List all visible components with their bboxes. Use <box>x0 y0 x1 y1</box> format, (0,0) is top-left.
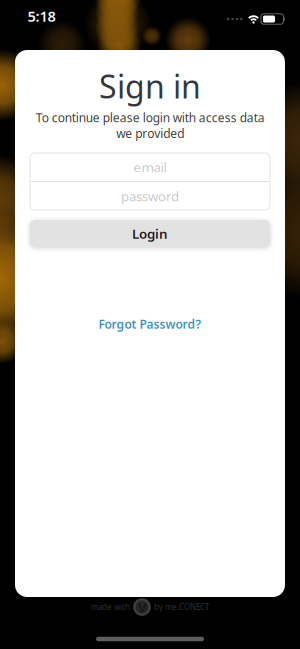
staticText: V <box>138 598 146 616</box>
button[interactable]: email <box>30 153 270 181</box>
staticText: Sign in <box>99 65 201 107</box>
staticText: by me.CONECT <box>154 602 209 612</box>
button[interactable]: password <box>30 182 270 210</box>
button[interactable]: Forgot Password? <box>80 316 220 332</box>
staticText: Login <box>132 225 168 242</box>
staticText: To continue please login with access dat… <box>35 110 264 141</box>
staticText: password <box>121 187 179 205</box>
staticText: made with <box>91 602 130 612</box>
staticText: 5:18 <box>27 6 55 26</box>
staticText: Forgot Password? <box>98 316 201 332</box>
staticText: email <box>133 158 166 176</box>
button[interactable]: Login <box>30 220 270 247</box>
